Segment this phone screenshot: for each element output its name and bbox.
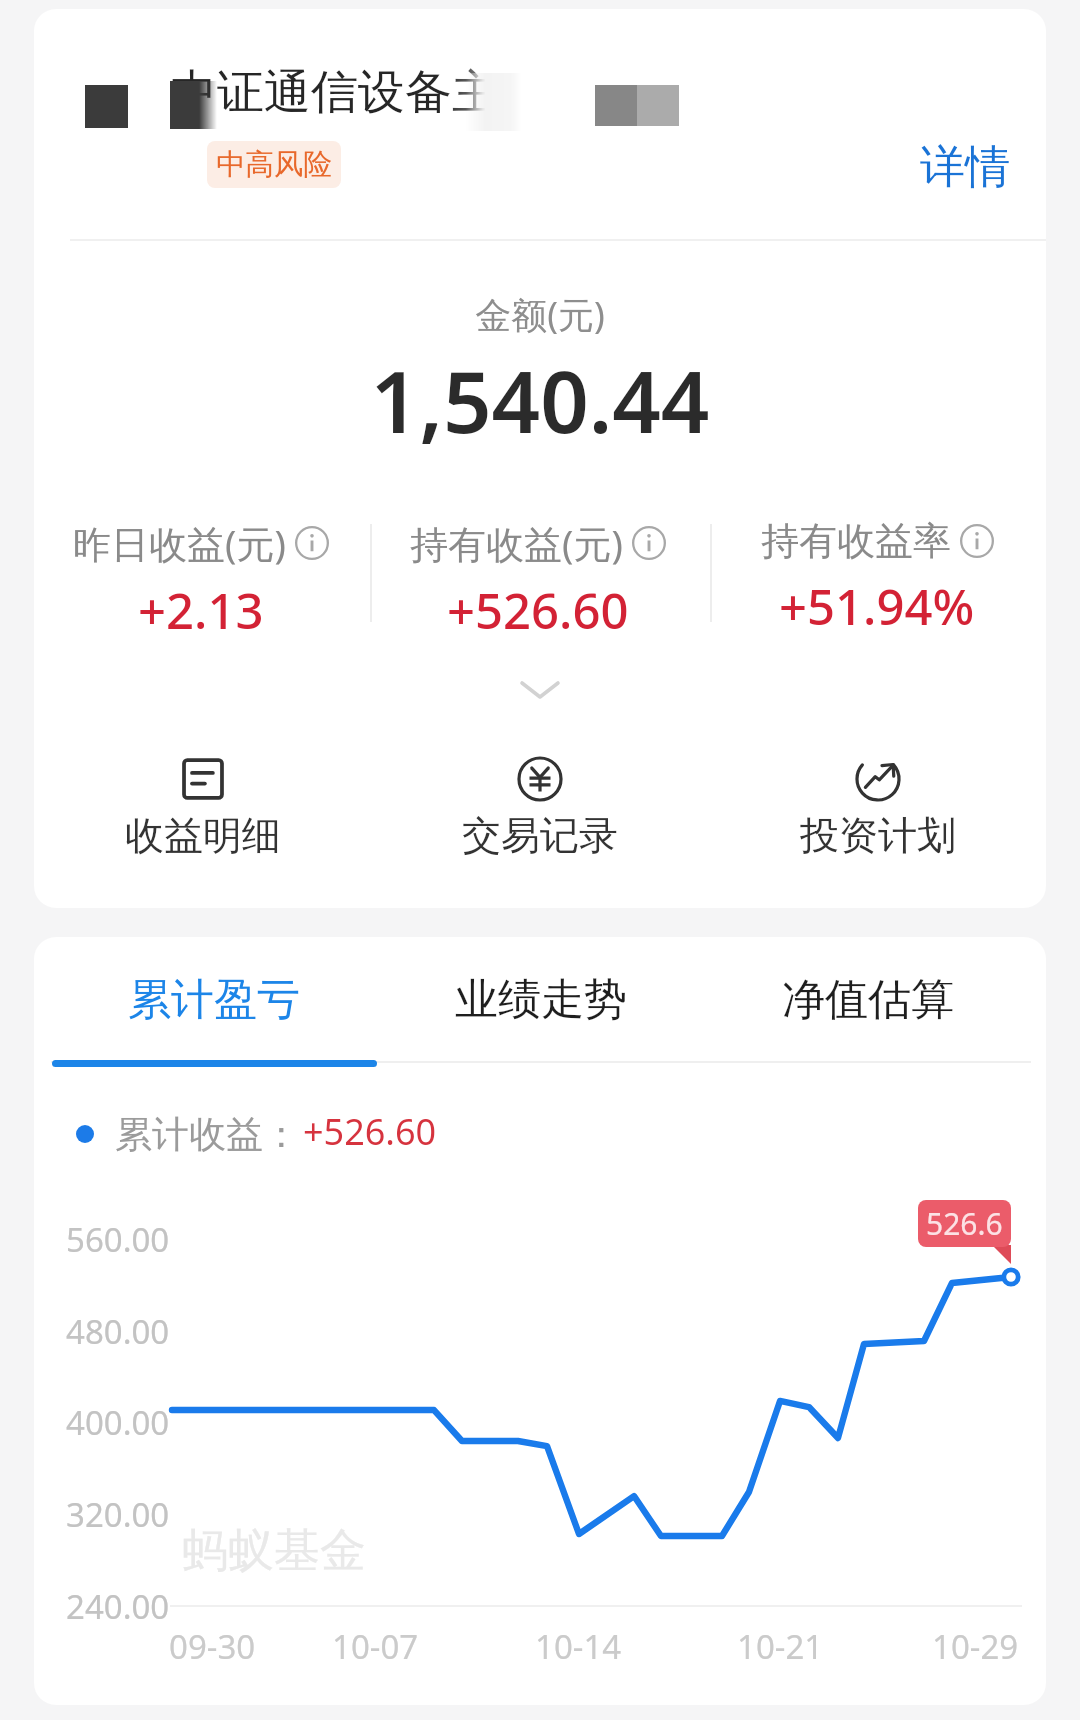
staticText: 累计盈亏: [128, 973, 300, 1027]
button[interactable]: 投资计划: [709, 753, 1046, 860]
staticText: 480.00: [66, 1309, 170, 1354]
staticText: +526.60: [303, 1107, 437, 1156]
staticText: 10-14: [535, 1624, 622, 1669]
button[interactable]: 详情: [906, 127, 1024, 208]
button[interactable]: 持有收益(元): [368, 517, 708, 645]
staticText: +51.94%: [779, 573, 975, 640]
staticText: +2.13: [138, 577, 264, 644]
staticText: 金额(元): [34, 290, 1046, 339]
staticText: 中高风险: [216, 146, 332, 183]
staticText: 560.00: [66, 1217, 170, 1262]
staticText: 蚂蚁基金: [182, 1522, 366, 1580]
button[interactable]: 收益明细: [34, 753, 371, 860]
staticText: 中证通信设备主: [170, 63, 499, 122]
staticText: 投资计划: [800, 811, 956, 860]
staticText: 持有收益(元): [410, 517, 623, 569]
button[interactable]: 累计盈亏: [51, 937, 377, 1063]
staticText: 10-29: [932, 1624, 1019, 1669]
staticText: 收益明细: [125, 811, 281, 860]
button[interactable]: 累计盈亏走势图: [34, 937, 1046, 1705]
staticText: 净值估算: [782, 973, 954, 1027]
staticText: 交易记录: [462, 811, 618, 860]
button[interactable]: 中证通信设备主题基金: [70, 45, 730, 205]
button[interactable]: 昨日收益(元): [34, 517, 368, 645]
staticText: 526.6: [926, 1203, 1003, 1244]
button[interactable]: 净值估算: [704, 937, 1031, 1063]
staticText: 320.00: [66, 1492, 170, 1537]
staticText: 09-30: [169, 1624, 256, 1669]
staticText: 10-07: [332, 1624, 419, 1669]
button[interactable]: 业绩走势: [377, 937, 704, 1063]
button[interactable]: 持有收益率: [708, 517, 1046, 645]
staticText: 详情: [920, 139, 1010, 196]
staticText: 1,540.44: [34, 342, 1046, 458]
staticText: 昨日收益(元): [73, 517, 286, 569]
button[interactable]: 展开收益详情: [487, 662, 593, 718]
staticText: 业绩走势: [455, 973, 627, 1027]
button[interactable]: 交易记录: [371, 753, 709, 860]
staticText: +526.60: [447, 577, 629, 644]
staticText: 10-21: [737, 1624, 824, 1669]
staticText: 持有收益率: [761, 517, 951, 565]
staticText: 累计收益：: [115, 1111, 300, 1158]
staticText: 240.00: [66, 1584, 170, 1629]
staticText: 400.00: [66, 1400, 170, 1445]
